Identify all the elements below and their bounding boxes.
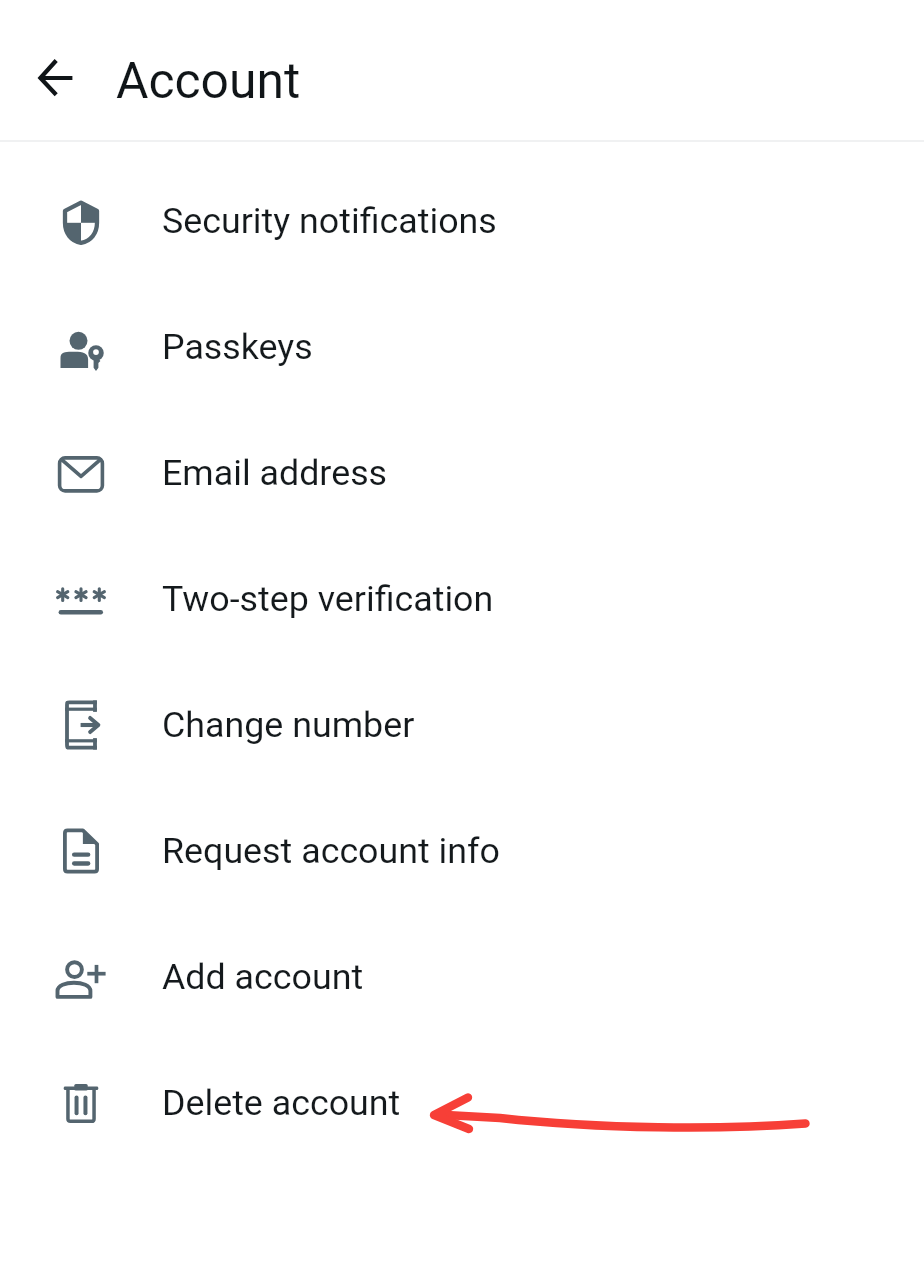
staticText: Change number [162,704,415,746]
staticText: Account [116,52,301,110]
staticText: Two-step verification [162,578,494,620]
staticText: Security notifications [162,200,497,242]
staticText: Delete account [162,1082,401,1124]
staticText: Request account info [162,830,500,872]
button[interactable]: Add account [0,914,924,1040]
button[interactable]: Two-step verification [0,536,924,662]
button[interactable]: Back [21,44,89,112]
button[interactable]: Email address [0,410,924,536]
button[interactable]: Change number [0,662,924,788]
button[interactable]: Passkeys [0,284,924,410]
staticText: Add account [162,956,364,998]
button[interactable]: Request account info [0,788,924,914]
button[interactable]: Delete account [0,1040,924,1166]
staticText: Passkeys [162,326,313,368]
button[interactable]: Security notifications [0,158,924,284]
staticText: Email address [162,452,388,494]
